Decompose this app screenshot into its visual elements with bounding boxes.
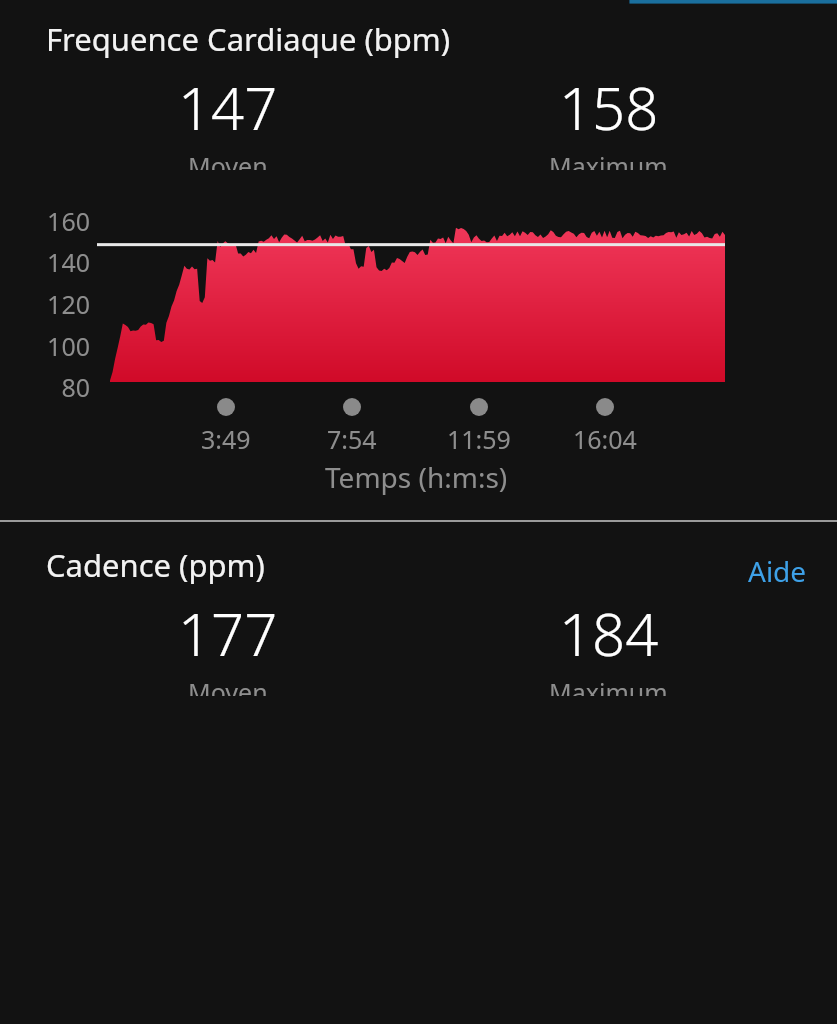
staticText: Frequence Cardiaque (bpm)	[46, 18, 451, 60]
button[interactable]: Aide	[748, 552, 807, 590]
staticText: Maximum	[549, 149, 668, 170]
staticText: 177	[178, 594, 278, 673]
staticText: 120	[47, 287, 90, 319]
staticText: 16:04	[573, 422, 637, 456]
staticText: 11:59	[447, 422, 511, 456]
staticText: 3:49	[201, 422, 251, 456]
button[interactable]: Frequence Cardiaque (bpm)	[0, 0, 837, 520]
staticText: 184	[559, 594, 659, 673]
staticText: 147	[178, 68, 278, 147]
staticText: Moyen	[188, 149, 268, 170]
staticText: Cadence (ppm)	[46, 544, 265, 586]
staticText: Moyen	[188, 675, 268, 696]
staticText: 7:54	[327, 422, 377, 456]
button[interactable]: Cadence (ppm)	[0, 522, 837, 1024]
staticText: Maximum	[549, 675, 668, 696]
staticText: Aide	[748, 552, 807, 590]
staticText: Temps (h:m:s)	[325, 458, 508, 496]
staticText: 140	[47, 245, 90, 277]
staticText: 160	[47, 204, 90, 236]
staticText: 100	[47, 329, 90, 361]
staticText: 80	[61, 370, 90, 402]
staticText: 158	[559, 68, 659, 147]
